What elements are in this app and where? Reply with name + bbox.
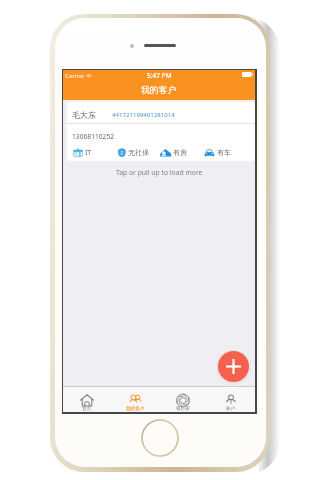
- button[interactable]: 我的客户: [111, 386, 159, 412]
- staticText: 毛大东: [72, 110, 96, 120]
- staticText: IT: [85, 148, 92, 157]
- button[interactable]: 毛大东: [67, 102, 255, 161]
- staticText: 银行家: [176, 406, 190, 412]
- staticText: 我的客户: [141, 85, 177, 96]
- staticText: 我的客户: [126, 406, 145, 412]
- staticText: 5:47 PM: [147, 71, 172, 80]
- staticText: 有房: [173, 148, 187, 157]
- staticText: 首页: [82, 406, 92, 412]
- staticText: 13068110252: [72, 132, 115, 141]
- button[interactable]: 账户: [207, 386, 255, 412]
- button[interactable]: Add customer: [218, 351, 249, 382]
- staticText: 无社保: [128, 148, 149, 157]
- staticText: 账户: [226, 406, 236, 412]
- staticText: 441721199401281014: [112, 110, 175, 118]
- button[interactable]: 首页: [63, 386, 111, 412]
- staticText: Carrier: [65, 72, 85, 80]
- staticText: 有车: [217, 148, 231, 157]
- staticText: Tap or pull up to load more: [116, 168, 203, 177]
- button[interactable]: 银行家: [159, 386, 207, 412]
